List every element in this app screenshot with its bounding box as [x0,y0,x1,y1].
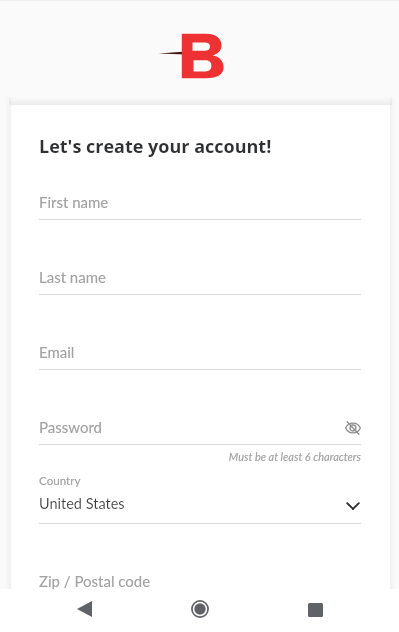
staticText: United States [39,495,125,512]
button[interactable]: First name [39,193,361,220]
staticText: Email [39,343,75,361]
button[interactable]: Country [39,473,361,523]
other: Show password [338,415,368,441]
button[interactable]: Zip / Postal code [39,572,361,589]
staticText: First name [39,193,109,211]
button[interactable]: Last name [39,268,361,295]
staticText: Password [39,418,102,436]
button[interactable]: Back [62,587,106,630]
staticText: Country [39,474,81,488]
button[interactable]: Recent apps [293,588,337,631]
button[interactable]: Email [39,343,361,370]
button[interactable]: Password [39,418,361,444]
staticText: Last name [39,268,106,286]
staticText: Must be at least 6 characters [39,450,361,463]
button[interactable]: Home [178,587,222,630]
staticText: Let's create your account! [39,134,272,159]
staticText: Zip / Postal code [39,572,151,589]
